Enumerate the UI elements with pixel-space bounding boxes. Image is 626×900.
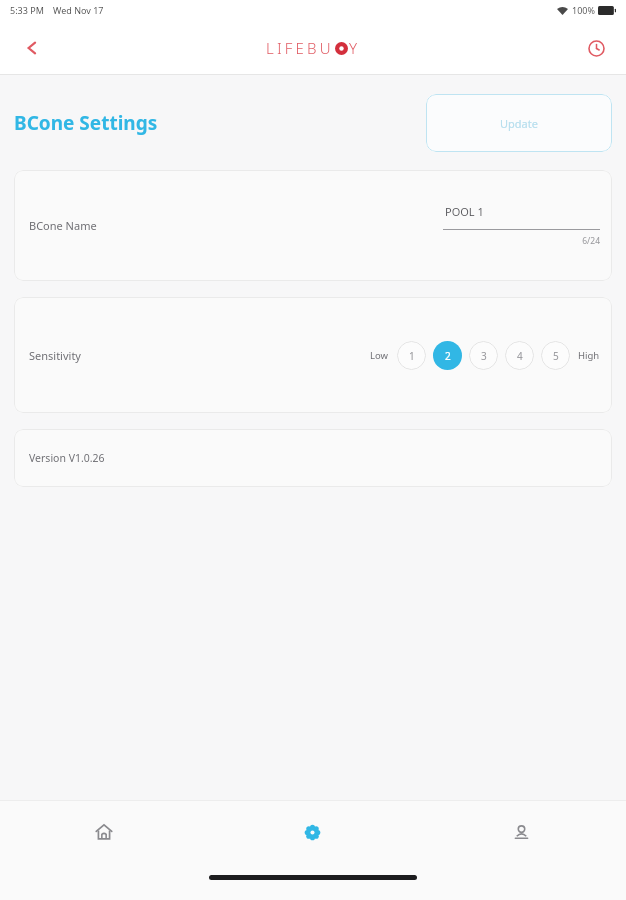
staticText: POOL 1 (445, 204, 484, 219)
button[interactable]: Update (426, 94, 612, 152)
staticText: 4 (517, 349, 523, 363)
staticText: 1 (409, 349, 415, 363)
button[interactable]: 1 (397, 341, 426, 370)
button[interactable]: POOL 1 (443, 204, 600, 247)
staticText: 5:33 PM (10, 4, 44, 16)
staticText: 5 (553, 349, 559, 363)
staticText: 100% (572, 4, 595, 16)
staticText: 3 (481, 349, 487, 363)
staticText: BCone Settings (14, 110, 158, 136)
staticText: BCone Name (29, 218, 97, 233)
staticText: Low (370, 349, 389, 362)
staticText: 6/24 (443, 235, 600, 247)
button[interactable]: Settings (208, 801, 417, 863)
staticText: 2 (445, 349, 451, 363)
staticText: LIFEBU (266, 38, 334, 58)
button[interactable]: 4 (505, 341, 534, 370)
staticText: Sensitivity (29, 348, 81, 363)
button[interactable]: Back (14, 30, 50, 66)
button[interactable]: 5 (541, 341, 570, 370)
button[interactable]: 2 (433, 341, 462, 370)
button[interactable]: Home (0, 801, 208, 863)
staticText: High (578, 349, 600, 362)
button[interactable]: History (578, 30, 614, 66)
button[interactable]: Profile (417, 801, 626, 863)
button[interactable]: 3 (469, 341, 498, 370)
staticText: Wed Nov 17 (53, 4, 104, 16)
staticText: Update (500, 116, 538, 131)
staticText: Version V1.0.26 (29, 451, 105, 465)
staticText: Y (349, 38, 361, 58)
